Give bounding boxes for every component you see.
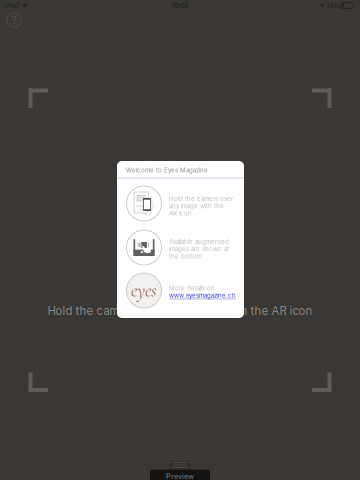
staticText: images are shown at bbox=[169, 245, 229, 253]
staticText: ? bbox=[11, 13, 17, 27]
staticText: Hold the camera over bbox=[169, 195, 233, 202]
staticText: eyes bbox=[136, 202, 144, 208]
staticText: 10:02 bbox=[171, 2, 188, 9]
staticText: More details on bbox=[169, 284, 215, 292]
staticText: eyes bbox=[131, 279, 157, 302]
staticText: 14% bbox=[326, 2, 339, 9]
staticText: Hold the camera over any image with the … bbox=[47, 304, 312, 318]
staticText: Preview bbox=[166, 472, 194, 480]
staticText: eyes bbox=[139, 206, 147, 213]
staticText: any image with the bbox=[169, 202, 224, 210]
staticText: iPad bbox=[5, 2, 19, 9]
button[interactable]: Help bbox=[7, 13, 21, 27]
staticText: the bottom bbox=[169, 253, 202, 260]
button[interactable]: Preview bbox=[150, 461, 210, 480]
staticText: AR icon bbox=[169, 210, 192, 217]
staticText: Welcome to Eyes Magazine bbox=[126, 166, 208, 174]
staticText: Available augmented bbox=[169, 238, 229, 245]
staticText: www.eyesmagazine.ch bbox=[169, 292, 236, 299]
